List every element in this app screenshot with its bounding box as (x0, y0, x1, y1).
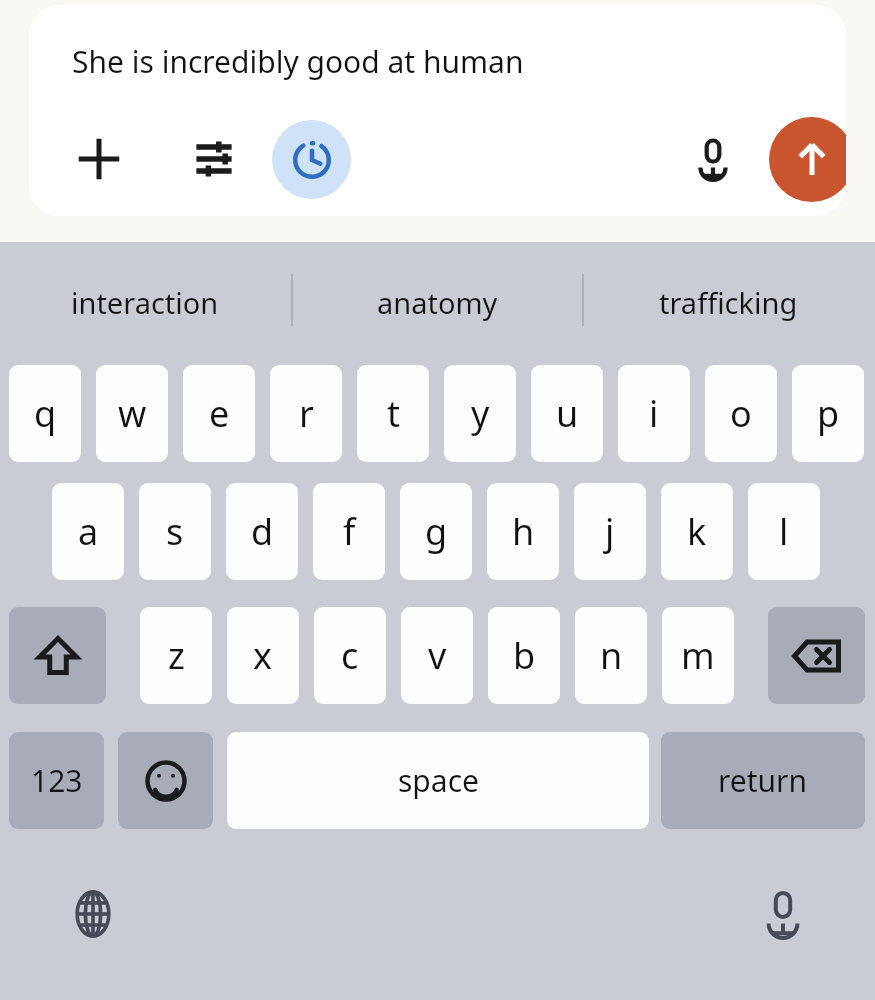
button[interactable]: o (705, 365, 777, 462)
button[interactable]: z (140, 607, 212, 704)
button[interactable]: space (227, 732, 649, 829)
staticText: v (428, 631, 447, 680)
button[interactable]: b (488, 607, 560, 704)
button[interactable]: x (227, 607, 299, 704)
button[interactable]: Shift (9, 607, 106, 704)
staticText: y (471, 389, 490, 438)
staticText: k (687, 507, 707, 556)
staticText: r (299, 389, 314, 438)
staticText: She is incredibly good at human (72, 41, 524, 82)
button[interactable]: Voice input (676, 122, 750, 196)
staticText: t (387, 389, 400, 438)
button[interactable]: History (272, 120, 351, 199)
staticText: trafficking (659, 283, 798, 322)
button[interactable]: return (661, 732, 865, 829)
staticText: m (681, 631, 715, 680)
button[interactable]: j (574, 483, 646, 580)
staticText: o (730, 389, 752, 438)
button[interactable]: Change keyboard language (55, 876, 131, 952)
button[interactable]: Add attachment (61, 121, 137, 197)
staticText: return (718, 760, 808, 801)
button[interactable]: f (313, 483, 385, 580)
button[interactable]: h (487, 483, 559, 580)
button[interactable]: Send (769, 117, 846, 202)
staticText: n (600, 631, 623, 680)
button[interactable]: i (618, 365, 690, 462)
button[interactable]: Backspace (768, 607, 865, 704)
button[interactable]: s (139, 483, 211, 580)
button[interactable]: p (792, 365, 864, 462)
staticText: h (512, 507, 535, 556)
button[interactable]: u (531, 365, 603, 462)
staticText: 123 (31, 760, 83, 801)
staticText: l (779, 507, 789, 556)
staticText: c (341, 631, 359, 680)
staticText: anatomy (377, 283, 498, 322)
button[interactable]: n (575, 607, 647, 704)
button[interactable]: interaction (0, 262, 290, 342)
staticText: a (78, 507, 99, 556)
button[interactable]: Dictation (745, 876, 821, 952)
staticText: e (209, 389, 230, 438)
staticText: i (649, 389, 659, 438)
staticText: s (166, 507, 184, 556)
button[interactable]: trafficking (583, 262, 873, 342)
staticText: u (556, 389, 579, 438)
button[interactable]: k (661, 483, 733, 580)
button[interactable]: m (662, 607, 734, 704)
staticText: b (513, 631, 536, 680)
button[interactable]: l (748, 483, 820, 580)
staticText: space (398, 760, 479, 801)
staticText: f (343, 507, 356, 556)
button[interactable]: a (52, 483, 124, 580)
button[interactable]: anatomy (292, 262, 582, 342)
button[interactable]: Emoji (118, 732, 213, 829)
button[interactable]: y (444, 365, 516, 462)
staticText: p (817, 389, 840, 438)
button[interactable]: q (9, 365, 81, 462)
staticText: d (251, 507, 274, 556)
button[interactable]: r (270, 365, 342, 462)
staticText: interaction (71, 283, 219, 322)
button[interactable]: w (96, 365, 168, 462)
staticText: j (605, 507, 615, 556)
button[interactable]: Settings (178, 123, 250, 195)
button[interactable]: d (226, 483, 298, 580)
staticText: q (34, 389, 57, 438)
button[interactable]: c (314, 607, 386, 704)
button[interactable]: 123 (9, 732, 104, 829)
staticText: x (253, 631, 273, 680)
button[interactable]: t (357, 365, 429, 462)
staticText: g (425, 507, 448, 556)
button[interactable]: e (183, 365, 255, 462)
staticText: w (118, 389, 147, 438)
button[interactable]: g (400, 483, 472, 580)
button[interactable]: v (401, 607, 473, 704)
staticText: z (168, 631, 185, 680)
